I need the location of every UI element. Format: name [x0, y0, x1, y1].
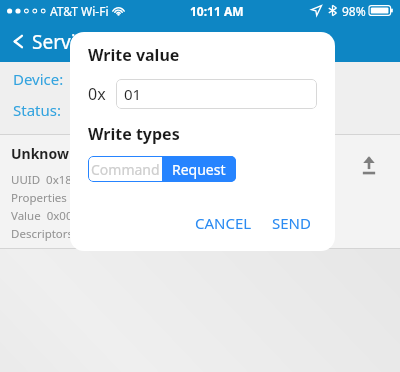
staticText: Write value	[88, 44, 180, 66]
button[interactable]: Request	[162, 156, 236, 182]
button[interactable]: Write value	[338, 135, 400, 248]
staticText: 10:11 AM	[190, 3, 244, 19]
staticText: Value 0x00	[11, 208, 73, 224]
staticText: Write types	[88, 123, 180, 145]
staticText: UUID 0x1802	[11, 172, 86, 188]
button[interactable]: CANCEL	[189, 209, 258, 237]
staticText: 0x	[88, 83, 106, 105]
staticText: CANCEL	[195, 213, 252, 233]
staticText: SEND	[272, 213, 311, 233]
staticText: Device:	[13, 69, 64, 89]
staticText: Unknown	[11, 144, 79, 163]
staticText: Properties	[11, 190, 67, 206]
staticText: 98%	[342, 3, 366, 19]
staticText: 01	[124, 84, 142, 104]
button[interactable]: SEND	[266, 209, 317, 237]
staticText: Status:	[13, 100, 61, 120]
staticText: Command	[91, 160, 160, 179]
button[interactable]: Services	[9, 21, 105, 62]
staticText: AT&T Wi-Fi	[50, 3, 109, 19]
staticText: Descriptors	[11, 226, 74, 242]
staticText: Request	[172, 160, 226, 179]
staticText: Services	[32, 29, 105, 55]
button[interactable]: Command	[88, 156, 162, 182]
button[interactable]: 01	[116, 79, 317, 109]
